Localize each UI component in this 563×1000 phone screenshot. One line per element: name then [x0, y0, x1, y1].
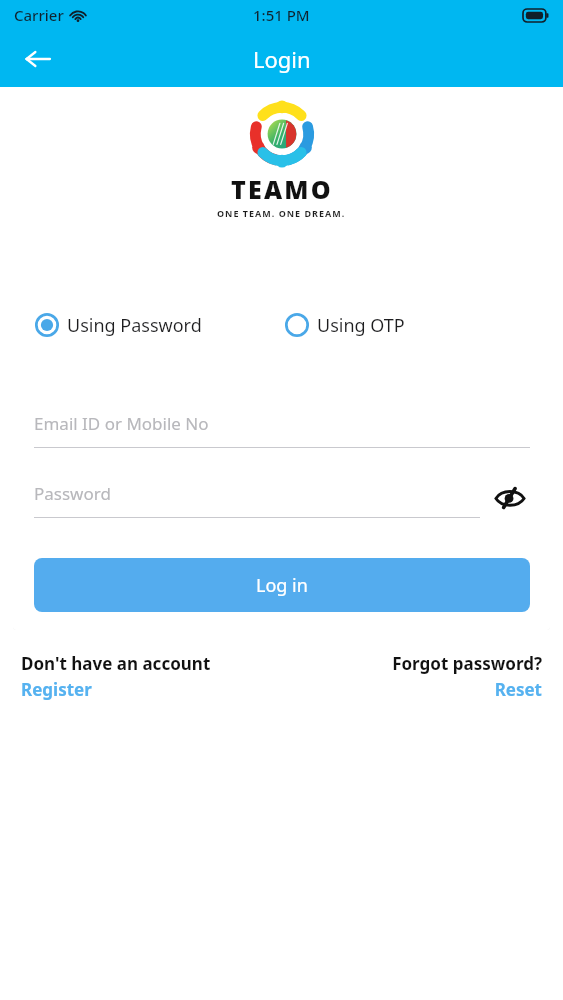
- staticText: Carrier: [14, 5, 64, 25]
- button[interactable]: Don't have an account: [21, 652, 211, 701]
- staticText: TEAMO: [231, 172, 333, 206]
- staticText: Forgot password?: [392, 652, 542, 675]
- staticText: 1:51 PM: [253, 5, 310, 25]
- staticText: Login: [253, 44, 311, 74]
- staticText: ONE TEAM. ONE DREAM.: [217, 207, 346, 219]
- staticText: Password: [34, 482, 111, 505]
- staticText: Using Password: [67, 313, 202, 338]
- button[interactable]: Using Password: [34, 310, 202, 340]
- button[interactable]: Log in: [34, 558, 530, 612]
- staticText: Log in: [256, 573, 308, 598]
- staticText: Register: [21, 678, 92, 701]
- button[interactable]: Password: [34, 482, 480, 518]
- staticText: Using OTP: [317, 313, 405, 338]
- button[interactable]: Using OTP: [284, 310, 405, 340]
- button[interactable]: Show password: [490, 478, 530, 518]
- staticText: Don't have an account: [21, 652, 211, 675]
- staticText: Reset: [494, 678, 542, 701]
- button[interactable]: Email ID or Mobile No: [34, 412, 530, 448]
- staticText: Email ID or Mobile No: [34, 412, 209, 435]
- button[interactable]: Back: [14, 35, 62, 83]
- button[interactable]: Forgot password?: [392, 652, 542, 701]
